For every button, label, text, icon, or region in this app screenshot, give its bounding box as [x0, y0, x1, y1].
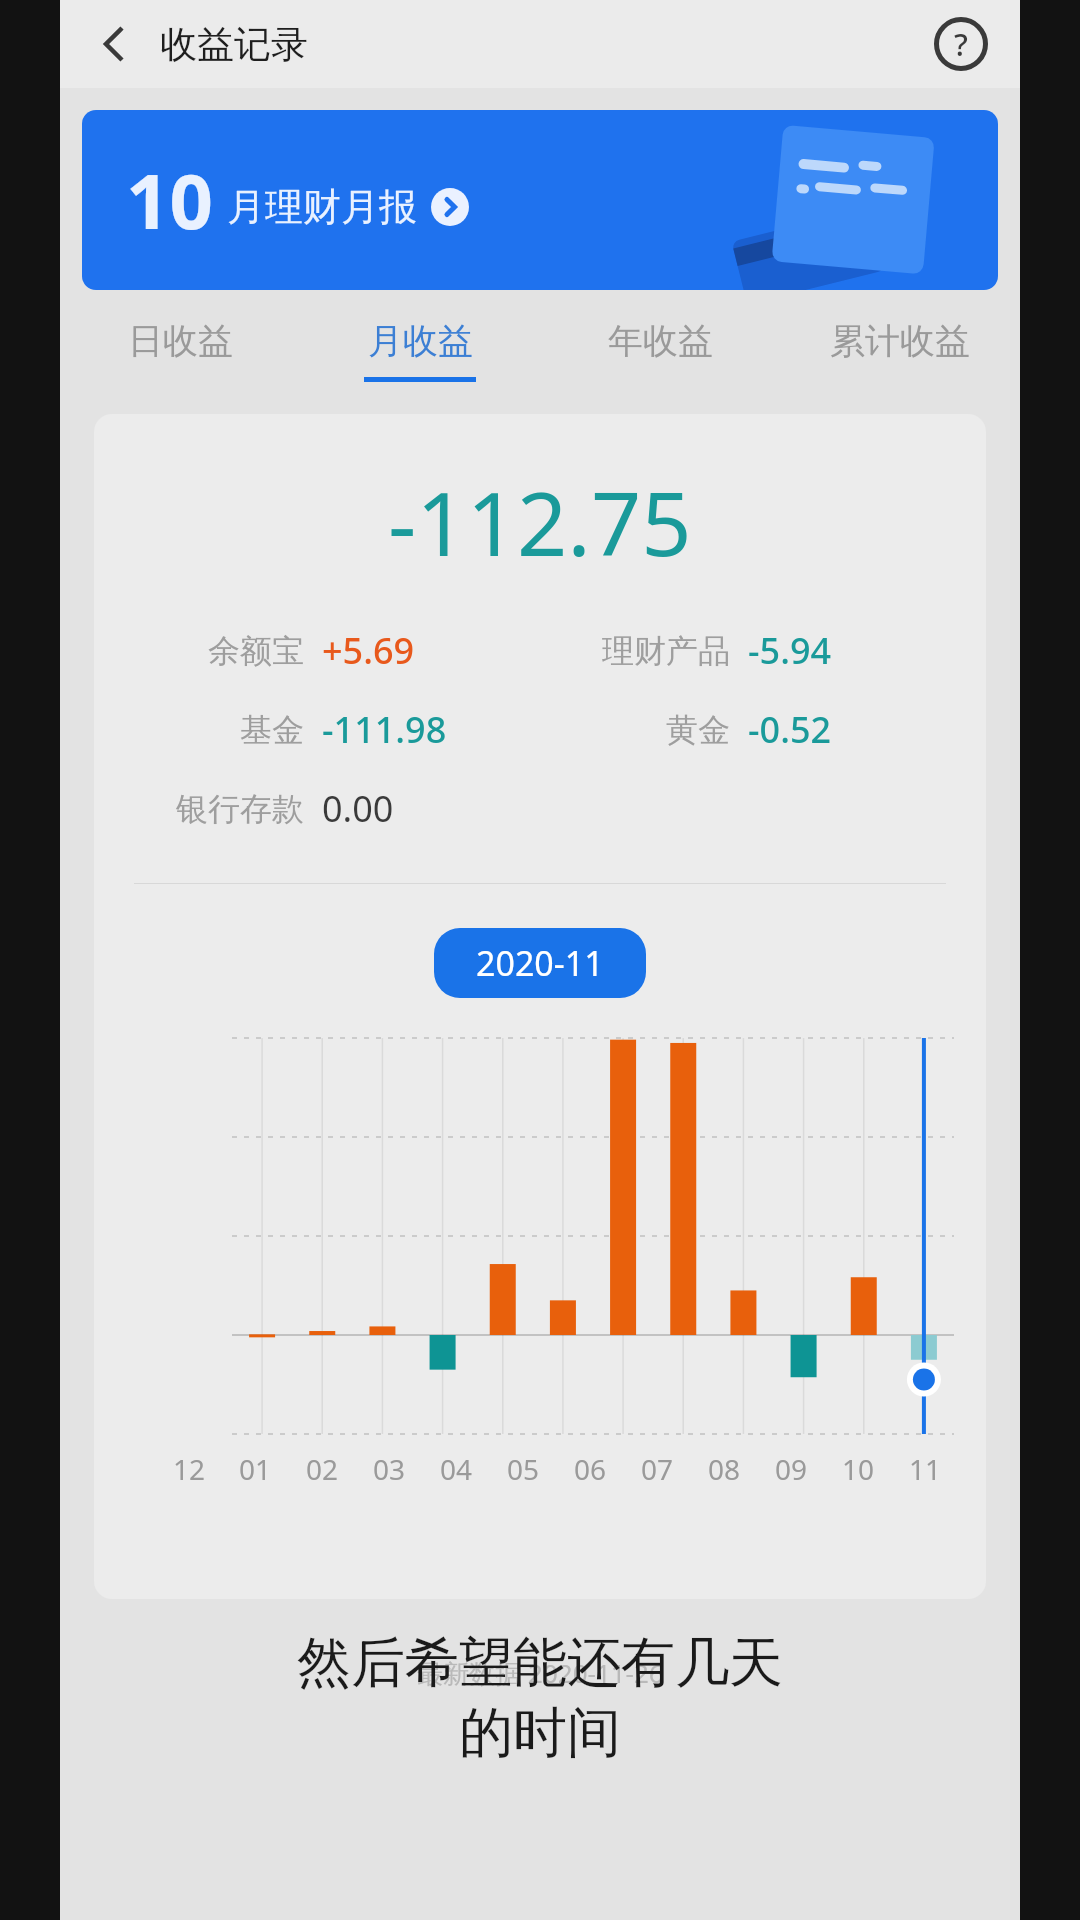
- staticText: 黄金: [666, 710, 730, 750]
- staticText: 04: [440, 1450, 473, 1488]
- staticText: 月收益: [368, 319, 473, 363]
- staticText: 02: [306, 1450, 339, 1488]
- staticText: ?: [954, 23, 968, 65]
- button[interactable]: 年收益: [540, 308, 780, 392]
- staticText: 01: [239, 1450, 272, 1488]
- staticText: -5.94: [748, 626, 832, 675]
- staticText: +5.69: [322, 626, 415, 675]
- staticText: 理财产品: [602, 631, 730, 671]
- staticText: 0.00: [322, 784, 394, 833]
- staticText: 07: [641, 1450, 674, 1488]
- staticText: 基金: [240, 710, 304, 750]
- staticText: 收益记录: [160, 21, 308, 68]
- button[interactable]: Help: [922, 5, 1000, 83]
- staticText: 最新数据 2020-11-26: [417, 1655, 664, 1691]
- staticText: 03: [373, 1450, 406, 1488]
- button[interactable]: Back: [78, 8, 150, 80]
- staticText: 10: [126, 148, 213, 252]
- button[interactable]: 累计收益: [780, 308, 1020, 392]
- staticText: 09: [775, 1450, 808, 1488]
- staticText: 05: [507, 1450, 540, 1488]
- staticText: 06: [574, 1450, 607, 1488]
- staticText: -0.52: [748, 705, 832, 754]
- button[interactable]: 10: [82, 110, 998, 290]
- staticText: 累计收益: [830, 319, 970, 363]
- button[interactable]: 日收益: [60, 308, 300, 392]
- button[interactable]: 2020-11: [434, 928, 646, 998]
- button[interactable]: 月收益: [300, 308, 540, 392]
- staticText: -111.98: [322, 705, 447, 754]
- staticText: 2020-11: [476, 940, 604, 986]
- staticText: -112.75: [388, 462, 692, 582]
- staticText: 月理财月报: [227, 183, 417, 231]
- staticText: 银行存款: [176, 789, 304, 829]
- staticText: 08: [708, 1450, 741, 1488]
- staticText: 日收益: [128, 319, 233, 363]
- staticText: 11: [909, 1450, 942, 1488]
- staticText: 然后希望能还有几天 的时间: [60, 1629, 1020, 1767]
- staticText: 10: [842, 1450, 875, 1488]
- staticText: 余额宝: [208, 631, 304, 671]
- staticText: 12: [173, 1450, 206, 1488]
- staticText: 年收益: [608, 319, 713, 363]
